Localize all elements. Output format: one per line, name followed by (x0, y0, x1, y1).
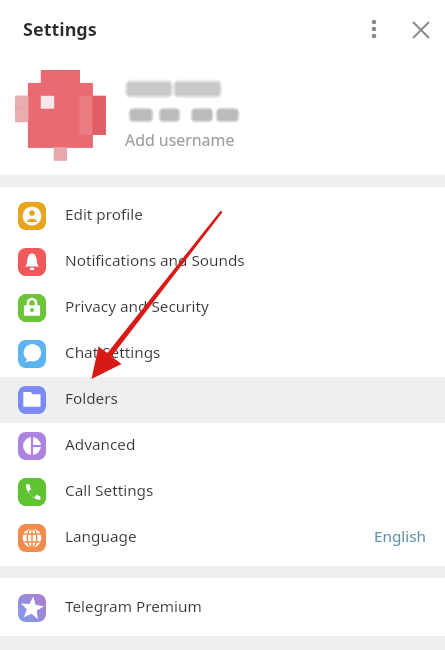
staticText: Chat Settings (65, 342, 161, 363)
button[interactable]: Add username (0, 59, 445, 175)
button[interactable]: Folders (0, 377, 445, 423)
button[interactable]: Chat Settings (0, 331, 445, 377)
staticText: Call Settings (65, 480, 154, 501)
button[interactable]: Privacy and Security (0, 285, 445, 331)
button[interactable]: Language (0, 515, 445, 561)
staticText: Settings (23, 17, 97, 42)
button[interactable]: Close (401, 10, 441, 50)
button[interactable]: Edit profile (0, 193, 445, 239)
button[interactable]: Advanced (0, 423, 445, 469)
button[interactable]: Call Settings (0, 469, 445, 515)
staticText: Privacy and Security (65, 296, 209, 317)
staticText: English (374, 526, 427, 547)
staticText: Edit profile (65, 204, 143, 225)
staticText: Folders (65, 388, 118, 409)
button[interactable]: Notifications and Sounds (0, 239, 445, 285)
staticText: Advanced (65, 434, 136, 455)
staticText: Add username (125, 129, 235, 151)
staticText: Notifications and Sounds (65, 250, 245, 271)
staticText: Telegram Premium (65, 596, 202, 617)
button[interactable]: Telegram Premium (0, 585, 445, 631)
button[interactable]: More options (354, 9, 394, 49)
staticText: Language (65, 526, 137, 547)
